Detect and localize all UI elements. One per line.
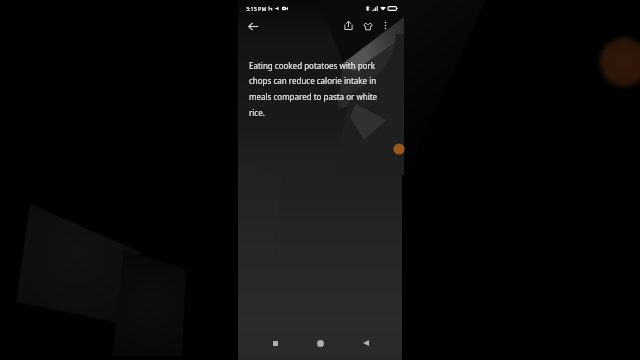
button[interactable]: Shirt	[359, 17, 376, 34]
button[interactable]: Share	[340, 17, 357, 34]
button[interactable]: Back	[244, 17, 262, 35]
button[interactable]: Home	[311, 334, 329, 352]
button[interactable]: Recents	[266, 334, 284, 352]
button[interactable]: More options	[378, 18, 393, 33]
staticText: Eating cooked potatoes with pork chops c…	[249, 60, 388, 119]
button[interactable]: Back	[357, 334, 375, 352]
staticText: 3:15 PM	[246, 5, 267, 12]
